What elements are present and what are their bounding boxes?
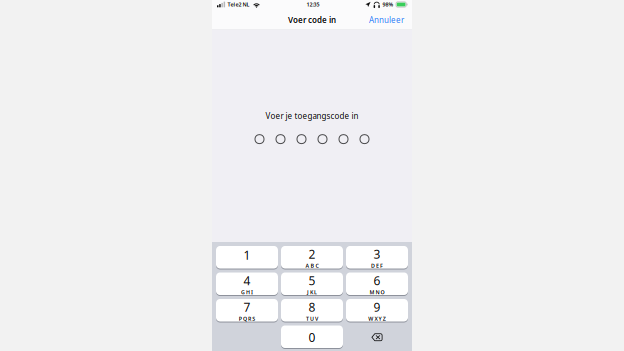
staticText: X [374, 315, 377, 322]
staticText: L [314, 289, 317, 296]
staticText: J [307, 289, 309, 296]
staticText: W [368, 315, 373, 322]
staticText: 9 [373, 299, 380, 315]
staticText: 6 [373, 273, 380, 289]
staticText: I [251, 289, 253, 296]
staticText: 12:35 [307, 1, 320, 8]
staticText: H [246, 289, 250, 296]
button[interactable]: 4 [216, 272, 278, 296]
staticText: D [371, 262, 375, 269]
staticText: C [316, 262, 319, 269]
staticText: 98% [383, 1, 394, 8]
staticText: 4 [243, 273, 250, 289]
button[interactable]: 3 [346, 246, 408, 269]
button[interactable]: 8 [281, 299, 343, 322]
staticText: Voer je toegangscode in [265, 110, 358, 121]
staticText: O [381, 289, 385, 296]
button[interactable]: 2 [281, 246, 343, 269]
staticText: M [369, 289, 374, 296]
staticText: 2 [308, 246, 315, 262]
staticText: 3 [373, 246, 380, 262]
staticText: Tele2 NL [228, 1, 250, 8]
button[interactable]: 6 [346, 272, 408, 296]
staticText: F [380, 262, 383, 269]
staticText: Y [379, 315, 382, 322]
staticText: G [241, 289, 245, 296]
staticText: V [315, 315, 318, 322]
staticText: S [252, 315, 255, 322]
staticText: E [376, 262, 379, 269]
staticText: N [375, 289, 379, 296]
staticText: R [248, 315, 251, 322]
staticText: K [310, 289, 313, 296]
staticText: A [305, 262, 309, 269]
staticText: U [310, 315, 314, 322]
button[interactable]: Backspace [346, 325, 408, 349]
button[interactable]: 7 [216, 299, 278, 322]
staticText: 7 [243, 299, 250, 315]
staticText: Annuleer [369, 15, 404, 25]
staticText: 0 [308, 329, 315, 345]
button[interactable]: 9 [346, 299, 408, 322]
staticText: 8 [308, 299, 315, 315]
button[interactable]: Annuleer [361, 12, 412, 28]
staticText: Q [243, 315, 247, 322]
staticText: P [239, 315, 242, 322]
staticText: Voer code in [288, 15, 336, 25]
staticText: Z [383, 315, 386, 322]
button[interactable]: 0 [281, 325, 343, 349]
button[interactable]: 1 [216, 246, 278, 269]
staticText: T [306, 315, 309, 322]
staticText: B [310, 262, 314, 269]
button[interactable]: 5 [281, 272, 343, 296]
staticText: 1 [243, 247, 250, 263]
staticText: 5 [308, 273, 315, 289]
